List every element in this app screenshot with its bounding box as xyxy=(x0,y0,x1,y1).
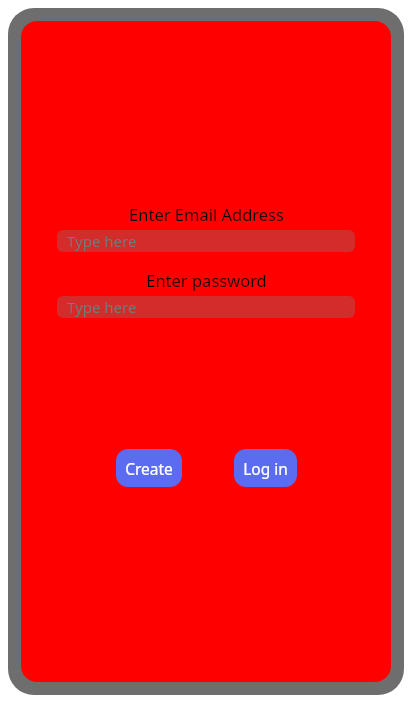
staticText: Log in xyxy=(243,458,288,479)
button[interactable]: Create xyxy=(116,449,182,487)
button[interactable]: Type here xyxy=(57,230,355,252)
staticText: Type here xyxy=(67,231,137,251)
button[interactable]: Type here xyxy=(57,296,355,318)
button[interactable]: Log in xyxy=(234,449,297,487)
staticText: Enter password xyxy=(146,269,267,291)
staticText: Type here xyxy=(67,297,137,317)
staticText: Enter Email Address xyxy=(129,203,284,225)
staticText: Create xyxy=(125,458,173,479)
